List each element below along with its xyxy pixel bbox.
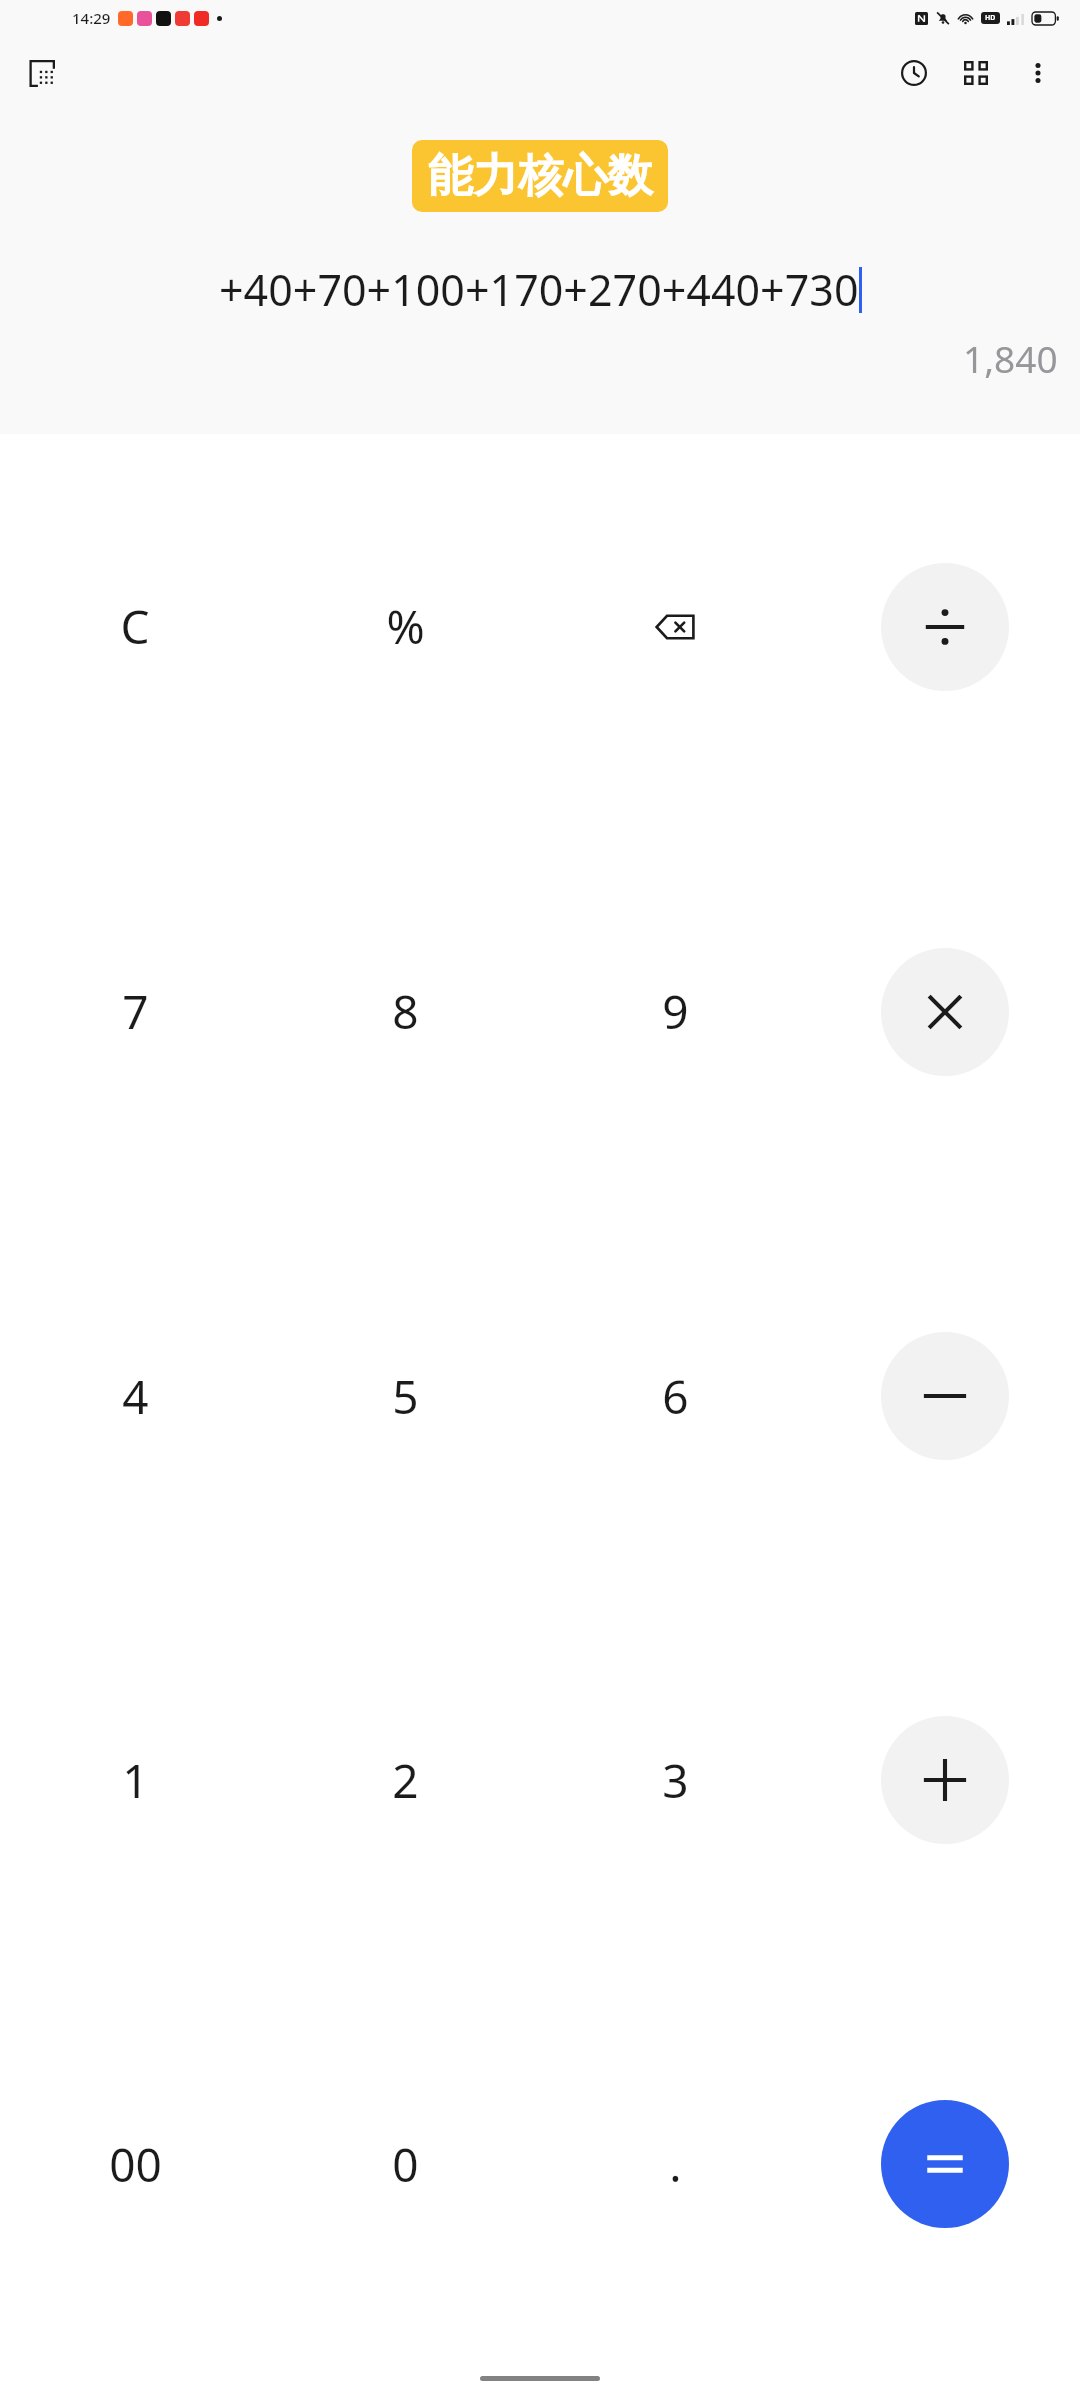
button[interactable]: C [0,434,270,819]
button[interactable]: 6 [540,1204,810,1588]
button[interactable]: 0 [270,1972,540,2356]
staticText: 0 [392,2133,419,2196]
staticText: C [120,595,150,658]
button[interactable]: Equals [881,2100,1009,2228]
button[interactable]: 9 [540,819,810,1204]
button[interactable]: % [270,434,540,819]
staticText: 1,840 [963,333,1058,383]
staticText: +40+70+100+170+270+440+730 [219,260,859,319]
staticText: . [669,2133,682,2196]
button[interactable]: 3 [540,1588,810,1972]
button[interactable]: 能力核心数 [412,140,668,212]
button[interactable]: 5 [270,1204,540,1588]
staticText: 14:29 [72,8,111,28]
button[interactable]: Scientific mode [16,47,68,99]
staticText: 8 [392,980,419,1043]
button[interactable]: 8 [270,819,540,1204]
staticText: 00 [109,2133,162,2196]
button[interactable]: 7 [0,819,270,1204]
button[interactable]: Backspace [540,434,810,819]
staticText: 能力核心数 [428,148,653,205]
button[interactable]: 4 [0,1204,270,1588]
button[interactable]: Minus [881,1332,1009,1460]
button[interactable]: 00 [0,1972,270,2356]
button[interactable]: Multiply [881,948,1009,1076]
staticText: 3 [662,1749,689,1812]
staticText: 2 [392,1749,419,1812]
button[interactable]: Divide [881,563,1009,691]
button[interactable]: More options [1012,47,1064,99]
staticText: 9 [662,980,689,1043]
button[interactable]: 1 [0,1588,270,1972]
staticText: % [386,595,425,658]
button[interactable]: History [888,47,940,99]
staticText: 6 [662,1365,689,1428]
staticText: HD [985,13,996,23]
button[interactable]: Converters [950,47,1002,99]
button[interactable]: . [540,1972,810,2356]
button[interactable]: Plus [881,1716,1009,1844]
staticText: 4 [122,1365,149,1428]
staticText: 1 [122,1749,149,1812]
staticText: 7 [122,980,149,1043]
button[interactable]: 2 [270,1588,540,1972]
staticText: 5 [392,1365,419,1428]
